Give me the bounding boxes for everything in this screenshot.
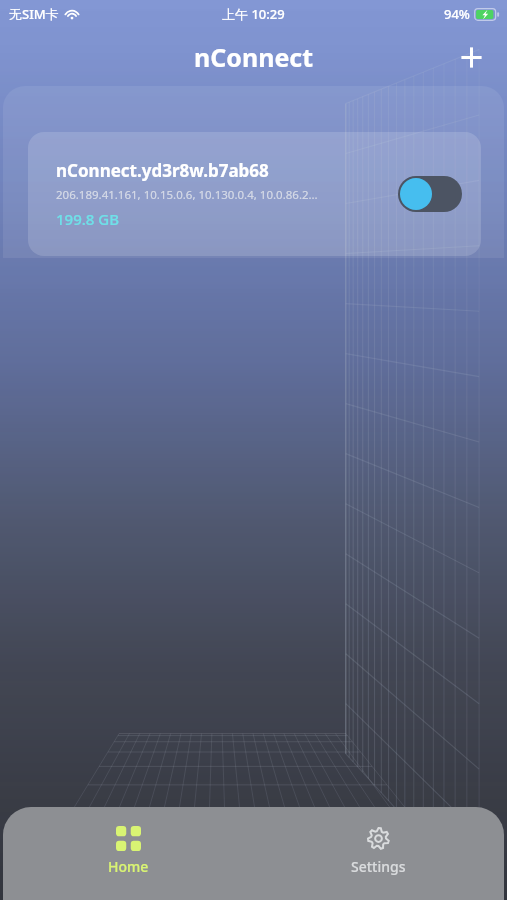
staticText: 199.8 GB	[56, 209, 120, 229]
staticText: 无SIM卡	[9, 5, 59, 23]
staticText: Home	[108, 857, 149, 876]
button[interactable]: Connection toggle	[398, 176, 462, 212]
staticText: nConnect.yd3r8w.b7ab68	[56, 159, 269, 182]
button[interactable]: Home	[3, 807, 253, 900]
button[interactable]: Settings	[253, 807, 504, 900]
button[interactable]: nConnect.yd3r8w.b7ab68	[28, 132, 481, 256]
staticText: Settings	[351, 857, 406, 876]
staticText: 206.189.41.161, 10.15.0.6, 10.130.0.4, 1…	[56, 187, 318, 203]
button[interactable]: Add connection	[452, 38, 490, 76]
staticText: nConnect	[194, 40, 314, 74]
staticText: 上午 10:29	[222, 5, 285, 23]
staticText: 94%	[444, 5, 470, 23]
